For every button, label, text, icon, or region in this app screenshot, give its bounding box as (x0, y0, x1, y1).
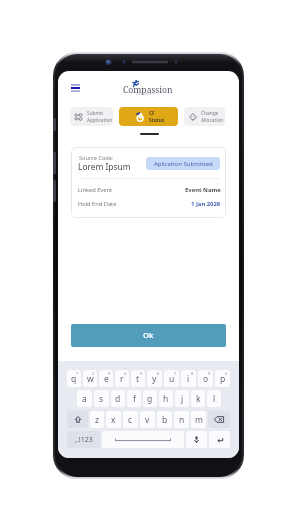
staticText: s (99, 393, 104, 405)
button[interactable]: d (111, 390, 125, 407)
button[interactable]: y (147, 370, 162, 387)
staticText: r (120, 373, 124, 385)
button[interactable]: o (198, 370, 213, 387)
staticText: e (104, 373, 109, 385)
button[interactable]: Submit (70, 107, 113, 126)
staticText: Event Name (185, 186, 221, 194)
button[interactable]: Change (184, 107, 225, 126)
staticText: c (128, 414, 133, 426)
staticText: 5 (140, 371, 143, 376)
button[interactable]: f (127, 390, 141, 407)
button[interactable]: Voice input (186, 431, 207, 448)
staticText: Submit (87, 110, 104, 117)
staticText: q (71, 373, 77, 385)
staticText: Linked Event (78, 186, 113, 194)
button[interactable]: h (159, 390, 173, 407)
button[interactable]: k (191, 390, 205, 407)
button[interactable]: z (90, 411, 104, 428)
staticText: Status (149, 117, 165, 124)
staticText: Change (201, 110, 219, 117)
staticText: n (179, 414, 185, 426)
button[interactable]: Ok (71, 324, 226, 347)
button[interactable]: v (140, 411, 155, 428)
staticText: g (147, 393, 153, 405)
staticText: 6 (157, 371, 160, 376)
button[interactable]: Backspace (208, 411, 230, 428)
staticText: k (196, 393, 201, 405)
staticText: o (203, 373, 209, 385)
button[interactable]: Space (102, 431, 184, 448)
button[interactable]: j (175, 390, 189, 407)
button[interactable]: Enter (209, 431, 230, 448)
staticText: 2 (92, 371, 95, 376)
button[interactable]: b (157, 411, 172, 428)
staticText: a (82, 393, 87, 405)
staticText: CF (149, 110, 155, 117)
button[interactable]: w (83, 370, 97, 387)
button[interactable]: CF (119, 107, 178, 126)
button[interactable]: i (181, 370, 196, 387)
staticText: Source Code: (79, 154, 114, 162)
staticText: y (152, 373, 157, 385)
staticText: m (195, 414, 203, 426)
staticText: Hold End Date (78, 200, 117, 208)
button[interactable]: e (99, 370, 113, 387)
staticText: 1 (76, 371, 79, 376)
staticText: 3 (108, 371, 111, 376)
staticText: Aplication Submitted (154, 160, 213, 168)
staticText: Allocation (201, 117, 224, 124)
staticText: b (162, 414, 168, 426)
button[interactable]: Menu (68, 81, 83, 95)
button[interactable]: t (131, 370, 145, 387)
staticText: 4 (124, 371, 127, 376)
staticText: 0 (225, 371, 228, 376)
staticText: ,.!123 (75, 435, 93, 445)
staticText: International (136, 92, 154, 96)
staticText: v (145, 414, 150, 426)
button[interactable]: n (174, 411, 189, 428)
button[interactable]: c (123, 411, 138, 428)
staticText: j (181, 393, 184, 405)
staticText: t (136, 373, 140, 385)
button[interactable]: s (94, 390, 109, 407)
button[interactable]: p (215, 370, 230, 387)
button[interactable]: u (164, 370, 179, 387)
button[interactable]: m (191, 411, 206, 428)
staticText: Compassion (123, 84, 173, 96)
button[interactable]: Aplication Submitted (146, 157, 220, 170)
staticText: f (133, 393, 136, 405)
button[interactable]: x (106, 411, 121, 428)
staticText: z (95, 414, 99, 426)
staticText: Lorem Ipsum (78, 161, 131, 172)
button[interactable]: l (207, 390, 221, 407)
staticText: 8 (191, 371, 194, 376)
staticText: d (115, 393, 121, 405)
button[interactable]: a (77, 390, 92, 407)
staticText: Application (87, 117, 112, 124)
staticText: u (169, 373, 175, 385)
staticText: l (213, 393, 216, 405)
staticText: i (187, 373, 190, 385)
staticText: 9 (208, 371, 211, 376)
staticText: x (111, 414, 116, 426)
button[interactable]: Shift (67, 411, 88, 428)
button[interactable]: r (115, 370, 129, 387)
button[interactable]: ,.!123 (67, 431, 100, 448)
button[interactable]: q (67, 370, 81, 387)
staticText: 7 (174, 371, 177, 376)
button[interactable]: g (143, 390, 157, 407)
staticText: Ok (143, 330, 154, 341)
staticText: 1 Jan 2028 (191, 200, 221, 208)
staticText: w (87, 373, 94, 385)
staticText: p (220, 373, 226, 385)
staticText: h (163, 393, 169, 405)
